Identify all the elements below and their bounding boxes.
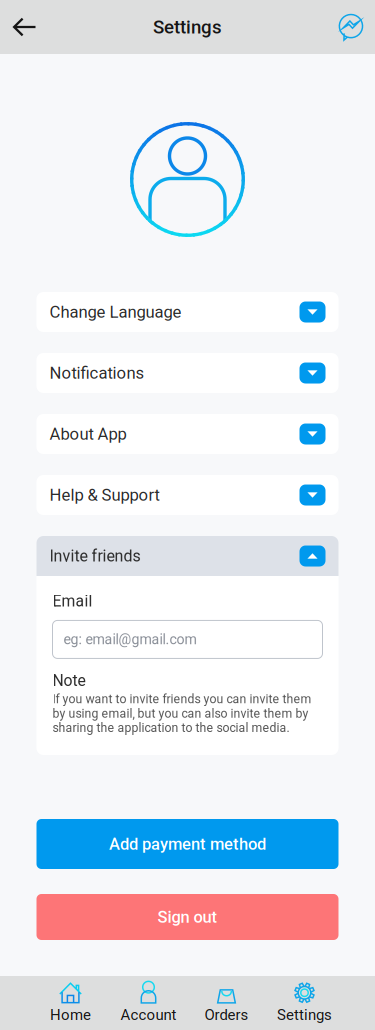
staticText: eg: email@gmail.com xyxy=(63,631,196,648)
staticText: Help & Support xyxy=(49,485,159,505)
staticText: About App xyxy=(49,424,126,444)
staticText: If you want to invite friends you can in… xyxy=(52,692,311,735)
staticText: Orders xyxy=(204,1006,248,1024)
staticText: Invite friends xyxy=(49,547,140,565)
button[interactable]: Notifications xyxy=(36,353,338,393)
button[interactable]: Add payment method xyxy=(36,819,338,869)
button[interactable]: Messages xyxy=(327,0,375,54)
staticText: Notifications xyxy=(49,363,144,383)
button[interactable]: Sign out xyxy=(36,894,338,940)
staticText: Settings xyxy=(277,1006,332,1024)
button[interactable]: Settings xyxy=(265,976,343,1030)
staticText: Note xyxy=(52,671,85,690)
staticText: Change Language xyxy=(49,302,181,322)
button[interactable]: Back xyxy=(0,0,49,54)
button[interactable]: About App xyxy=(36,414,338,454)
button[interactable]: Help & Support xyxy=(36,475,338,515)
staticText: Account xyxy=(120,1006,176,1024)
button[interactable]: Account xyxy=(109,976,187,1030)
staticText: Sign out xyxy=(157,907,217,927)
button[interactable]: Orders xyxy=(187,976,265,1030)
staticText: Email xyxy=(52,592,92,610)
staticText: Add payment method xyxy=(109,834,266,854)
staticText: Settings xyxy=(153,16,222,38)
staticText: Home xyxy=(50,1006,91,1024)
button[interactable]: Invite friends xyxy=(36,536,338,576)
button[interactable]: Home xyxy=(31,976,109,1030)
button[interactable]: Change Language xyxy=(36,292,338,332)
